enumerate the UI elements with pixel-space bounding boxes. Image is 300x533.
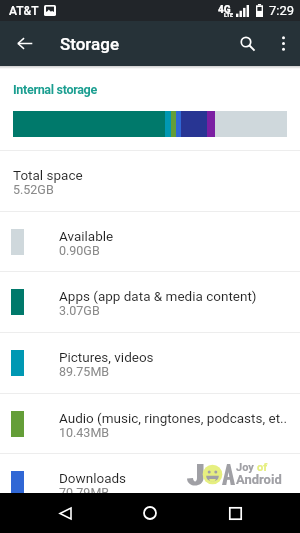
staticText: 0.90GB <box>59 243 100 258</box>
button[interactable]: Back <box>0 21 50 66</box>
staticText: 10.43MB <box>59 425 110 440</box>
staticText: LTE <box>224 12 233 18</box>
button[interactable]: Total space <box>0 151 300 211</box>
staticText: 5.52GB <box>13 182 54 197</box>
staticText: Total space <box>13 167 83 183</box>
staticText: 7:29 <box>269 3 295 18</box>
staticText: Pictures, videos <box>59 349 154 365</box>
button[interactable]: Back <box>45 493 85 533</box>
staticText: Downloads <box>59 470 127 486</box>
button[interactable]: Recent apps <box>215 493 255 533</box>
staticText: 89.75MB <box>59 364 110 379</box>
button[interactable]: Apps (app data & media content) <box>0 272 300 332</box>
staticText: Apps (app data & media content) <box>59 288 257 304</box>
button[interactable]: Pictures, videos <box>0 333 300 393</box>
staticText: 4G <box>218 4 231 16</box>
staticText: of <box>257 461 268 474</box>
button[interactable]: Available <box>0 212 300 272</box>
staticText: Audio (music, ringtones, podcasts, et.. <box>59 410 288 426</box>
button[interactable]: Search <box>228 21 266 66</box>
staticText: 3.07GB <box>59 303 100 318</box>
staticText: 70.79MB <box>59 485 110 500</box>
staticText: Available <box>59 228 114 244</box>
staticText: Android <box>236 472 282 487</box>
button[interactable]: Downloads <box>0 454 300 514</box>
button[interactable]: Home <box>130 493 170 533</box>
staticText: Joy <box>236 461 257 474</box>
staticText: AT&T <box>9 4 39 18</box>
staticText: Storage <box>60 34 120 54</box>
button[interactable]: Audio (music, ringtones, podcasts, et.. <box>0 394 300 454</box>
button[interactable]: More options <box>266 21 300 66</box>
staticText: Internal storage <box>13 82 97 97</box>
